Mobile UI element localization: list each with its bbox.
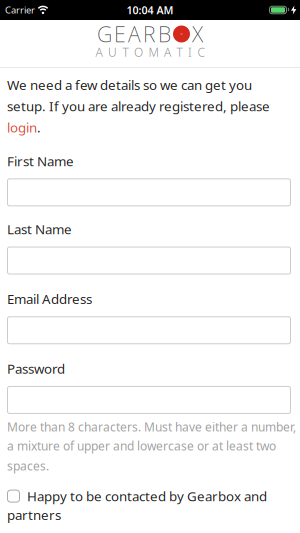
staticText: T (122, 44, 128, 60)
staticText: 10:04 AM (126, 3, 173, 17)
staticText: A (164, 44, 171, 60)
staticText: G (97, 20, 112, 48)
staticText: Password (7, 360, 65, 377)
staticText: O (134, 44, 143, 60)
staticText: login (7, 118, 37, 136)
staticText: I (188, 44, 192, 60)
staticText: T (176, 44, 182, 60)
staticText: C (197, 44, 204, 60)
staticText: . (37, 118, 41, 136)
staticText: B (158, 20, 171, 48)
button[interactable]: Happy to be contacted by Gearbox and (7, 487, 267, 524)
staticText: Last Name (7, 220, 72, 238)
staticText: Carrier (5, 4, 35, 16)
staticText: First Name (7, 152, 74, 170)
staticText: E (114, 20, 126, 48)
staticText: spaces. (7, 458, 49, 474)
button[interactable]: Password (7, 386, 291, 414)
button[interactable]: Email Address (7, 316, 291, 344)
staticText: A (128, 20, 141, 48)
staticText: We need a few details so we can get you (7, 76, 252, 94)
staticText: U (108, 44, 117, 60)
staticText: More than 8 characters. Must have either… (7, 419, 296, 435)
staticText: M (148, 44, 158, 60)
staticText: A (95, 44, 102, 60)
staticText: partners (7, 506, 61, 524)
staticText: setup. If you are already registered, pl… (7, 97, 270, 115)
staticText: X (192, 20, 203, 48)
staticText: Happy to be contacted by Gearbox and (27, 487, 267, 505)
button[interactable]: First Name (7, 178, 291, 206)
staticText: R (143, 20, 156, 48)
staticText: Email Address (7, 290, 92, 308)
button[interactable]: login (7, 118, 37, 136)
staticText: a mixture of upper and lowercase or at l… (7, 438, 276, 454)
button[interactable]: Last Name (7, 246, 291, 274)
